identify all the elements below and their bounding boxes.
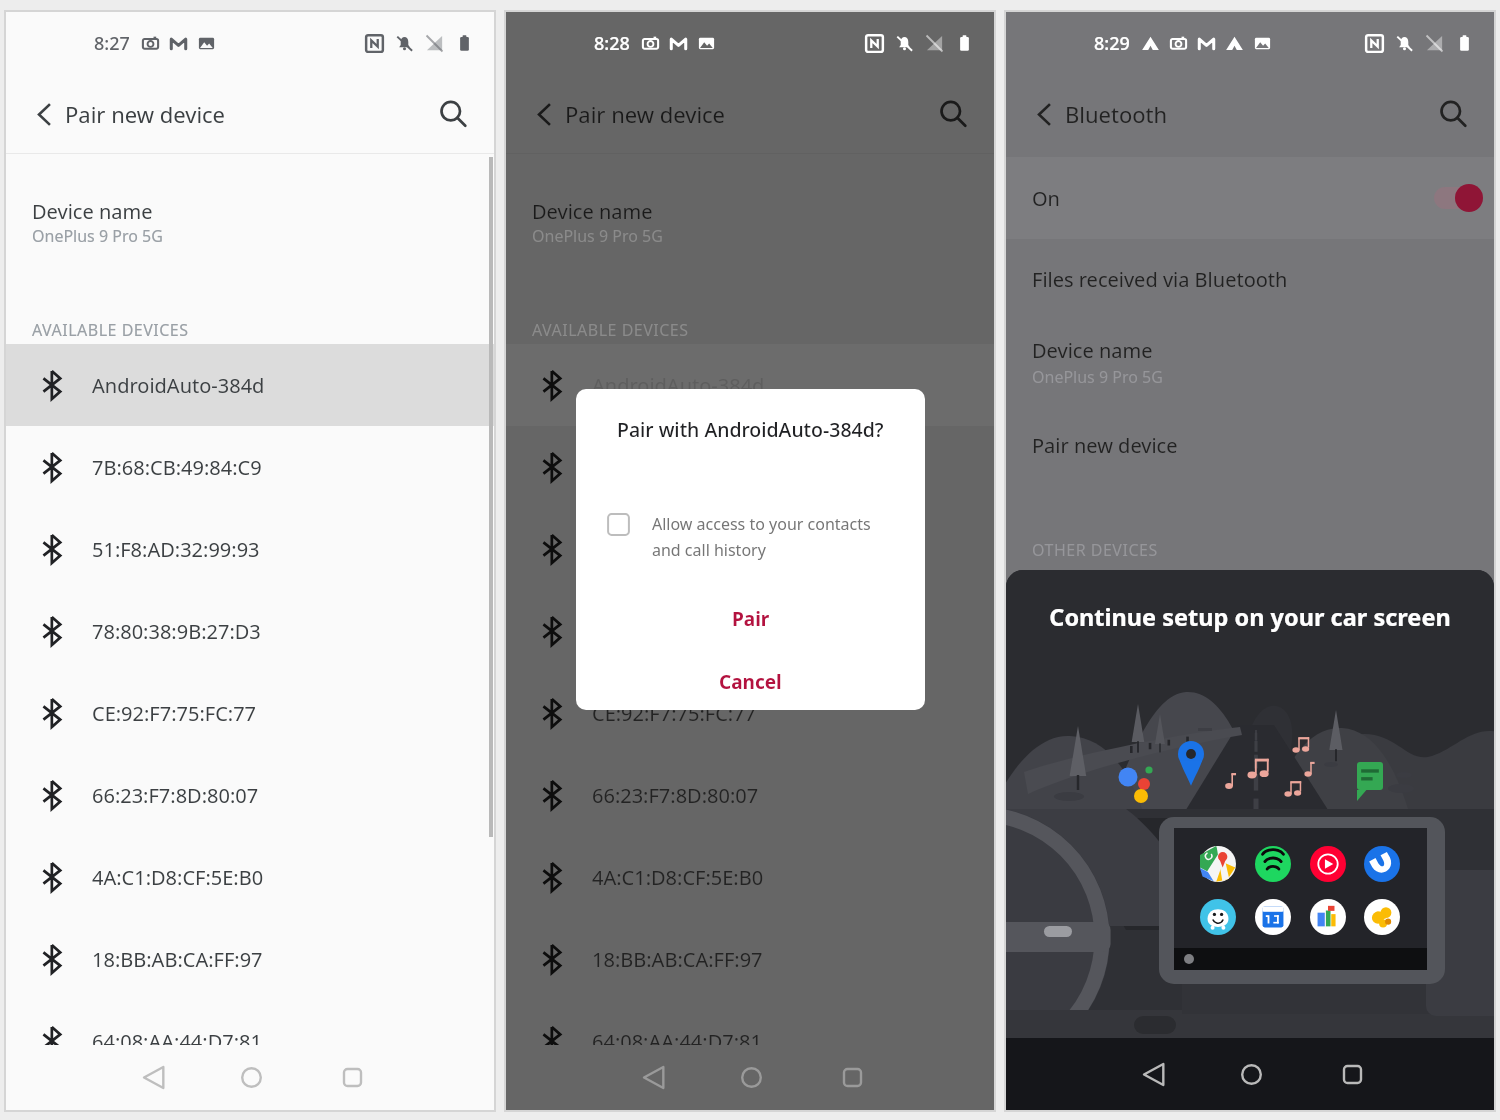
button[interactable]: 64:08:AA:44:D7:81: [506, 1000, 994, 1082]
button[interactable]: Back: [109, 1045, 199, 1110]
button[interactable]: AndroidAuto-384d: [506, 344, 994, 426]
button[interactable]: Device name: [1006, 322, 1494, 396]
button[interactable]: Home: [206, 1045, 296, 1110]
staticText: OnePlus 9 Pro 5G: [32, 225, 163, 247]
staticText: AndroidAuto-384d: [592, 372, 765, 399]
button[interactable]: Home: [1206, 1038, 1296, 1110]
staticText: 66:23:F7:8D:80:07: [592, 782, 759, 809]
button[interactable]: Recents: [1307, 1038, 1397, 1110]
button[interactable]: 66:23:F7:8D:80:07: [6, 754, 494, 836]
staticText: 18:BB:AB:CA:FF:97: [592, 946, 763, 973]
staticText: Device name: [1032, 337, 1153, 364]
button[interactable]: CE:92:F7:75:FC:77: [506, 672, 994, 754]
staticText: CE:92:F7:75:FC:77: [92, 700, 257, 727]
button[interactable]: Search: [930, 91, 976, 137]
staticText: 78:80:38:9B:27:D3: [592, 618, 761, 645]
staticText: 7B:68:CB:49:84:C9: [92, 454, 262, 481]
staticText: 4A:C1:D8:CF:5E:B0: [92, 864, 264, 891]
button[interactable]: Back: [22, 92, 66, 136]
staticText: 8:27: [94, 31, 130, 56]
staticText: On: [1032, 185, 1060, 212]
button[interactable]: 78:80:38:9B:27:D3: [6, 590, 494, 672]
staticText: CE:92:F7:75:FC:77: [592, 700, 757, 727]
button[interactable]: Search: [430, 91, 476, 137]
staticText: AndroidAuto-384d: [92, 372, 265, 399]
staticText: Pair new device: [65, 99, 226, 129]
staticText: AVAILABLE DEVICES: [532, 319, 689, 341]
staticText: 18:BB:AB:CA:FF:97: [92, 946, 263, 973]
staticText: Pair new device: [1032, 432, 1178, 459]
staticText: AVAILABLE DEVICES: [32, 319, 189, 341]
staticText: Pair new device: [565, 99, 726, 129]
button[interactable]: Back: [609, 1045, 699, 1110]
staticText: 64:08:AA:44:D7:81: [92, 1028, 262, 1055]
button[interactable]: Cancel: [576, 658, 925, 706]
staticText: Continue setup on your car screen: [1049, 601, 1451, 633]
button[interactable]: 18:BB:AB:CA:FF:97: [506, 918, 994, 1000]
button[interactable]: 64:08:AA:44:D7:81: [6, 1000, 494, 1082]
staticText: 8:29: [1094, 31, 1130, 56]
staticText: Bluetooth: [1065, 99, 1168, 129]
button[interactable]: AndroidAuto-384d: [6, 344, 494, 426]
button[interactable]: 66:23:F7:8D:80:07: [506, 754, 994, 836]
button[interactable]: 4A:C1:D8:CF:5E:B0: [6, 836, 494, 918]
staticText: Pair: [732, 606, 770, 632]
button[interactable]: 51:F8:AD:32:99:93: [506, 508, 994, 590]
button[interactable]: 4A:C1:D8:CF:5E:B0: [506, 836, 994, 918]
button[interactable]: CE:92:F7:75:FC:77: [6, 672, 494, 754]
button[interactable]: Pair: [576, 595, 925, 643]
button[interactable]: Home: [706, 1045, 796, 1110]
button[interactable]: Search: [1430, 91, 1476, 137]
staticText: 51:F8:AD:32:99:93: [92, 536, 260, 563]
staticText: OnePlus 9 Pro 5G: [1032, 366, 1163, 388]
button[interactable]: Files received via Bluetooth: [1006, 249, 1494, 311]
staticText: 8:28: [594, 31, 630, 56]
button[interactable]: Recents: [807, 1045, 897, 1110]
button[interactable]: 18:BB:AB:CA:FF:97: [6, 918, 494, 1000]
button[interactable]: Pair new device: [1006, 415, 1494, 477]
staticText: OnePlus 9 Pro 5G: [532, 225, 663, 247]
button[interactable]: Back: [1022, 92, 1066, 136]
staticText: 78:80:38:9B:27:D3: [92, 618, 261, 645]
staticText: Allow access to your contacts: [652, 513, 871, 535]
staticText: 4A:C1:D8:CF:5E:B0: [592, 864, 764, 891]
staticText: and call history: [652, 539, 766, 561]
staticText: Pair with AndroidAuto-384d?: [617, 416, 884, 443]
staticText: Device name: [32, 198, 153, 225]
button[interactable]: On: [1006, 157, 1494, 239]
button[interactable]: Back: [1109, 1038, 1199, 1110]
staticText: 64:08:AA:44:D7:81: [592, 1028, 762, 1055]
button[interactable]: 51:F8:AD:32:99:93: [6, 508, 494, 590]
staticText: Device name: [532, 198, 653, 225]
button[interactable]: Recents: [307, 1045, 397, 1110]
button[interactable]: Back: [522, 92, 566, 136]
staticText: Files received via Bluetooth: [1032, 266, 1288, 293]
staticText: Cancel: [719, 669, 782, 695]
staticText: 66:23:F7:8D:80:07: [92, 782, 259, 809]
button[interactable]: 78:80:38:9B:27:D3: [506, 590, 994, 672]
button[interactable]: 7B:68:CB:49:84:C9: [506, 426, 994, 508]
staticText: OTHER DEVICES: [1032, 539, 1158, 561]
button[interactable]: Allow access to your contacts and call h…: [607, 513, 630, 536]
button[interactable]: 7B:68:CB:49:84:C9: [6, 426, 494, 508]
staticText: 51:F8:AD:32:99:93: [592, 536, 760, 563]
